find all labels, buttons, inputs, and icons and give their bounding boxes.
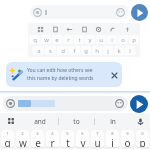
staticText: e bbox=[35, 136, 41, 147]
button[interactable]: 2 bbox=[16, 130, 29, 147]
staticText: g bbox=[84, 47, 88, 55]
staticText: 9 bbox=[126, 131, 129, 136]
staticText: o bbox=[124, 136, 131, 147]
button[interactable]: 5 bbox=[61, 130, 74, 147]
staticText: y bbox=[80, 136, 86, 147]
button[interactable]: Toolbar 1 bbox=[52, 26, 59, 33]
button[interactable]: k bbox=[114, 46, 124, 55]
staticText: 6 bbox=[81, 131, 84, 136]
staticText: y bbox=[88, 36, 92, 44]
button[interactable]: o bbox=[118, 35, 128, 44]
staticText: k bbox=[117, 47, 121, 55]
button[interactable]: Dismiss bbox=[109, 70, 119, 80]
staticText: to bbox=[73, 117, 80, 126]
button[interactable]: p bbox=[129, 35, 139, 44]
button[interactable]: Toolbar 4 bbox=[95, 26, 102, 33]
button[interactable]: r bbox=[63, 35, 73, 44]
staticText: 1 bbox=[6, 131, 9, 136]
button[interactable]: q bbox=[29, 35, 40, 44]
button[interactable]: Send bbox=[130, 95, 148, 113]
button[interactable]: 4 bbox=[46, 130, 59, 147]
staticText: f bbox=[73, 47, 76, 55]
staticText: p bbox=[132, 36, 136, 44]
staticText: j bbox=[107, 47, 109, 55]
button[interactable]: Toolbar 3 bbox=[81, 26, 88, 33]
button[interactable]: to bbox=[59, 113, 94, 129]
staticText: in bbox=[110, 117, 116, 126]
button[interactable]: t bbox=[74, 35, 84, 44]
staticText: p bbox=[139, 136, 146, 147]
button[interactable]: and bbox=[22, 113, 58, 129]
button[interactable]: Voice input bbox=[130, 113, 150, 129]
staticText: q bbox=[33, 36, 37, 44]
staticText: q bbox=[4, 136, 11, 147]
button[interactable]: w bbox=[41, 35, 51, 44]
other: Emoji bbox=[116, 8, 125, 17]
staticText: 5 bbox=[66, 131, 69, 136]
staticText: 3 bbox=[36, 131, 39, 136]
button[interactable]: 0 bbox=[136, 130, 149, 147]
button[interactable]: j bbox=[103, 46, 113, 55]
button[interactable]: u bbox=[96, 35, 106, 44]
other: Emoji bbox=[115, 99, 124, 108]
button[interactable]: i bbox=[107, 35, 117, 44]
staticText: h bbox=[95, 47, 99, 55]
staticText: u bbox=[99, 36, 103, 44]
button[interactable]: f bbox=[69, 46, 80, 55]
button[interactable]: g bbox=[81, 46, 91, 55]
button[interactable]: Attach bbox=[30, 5, 129, 19]
button[interactable]: e bbox=[52, 35, 62, 44]
staticText: o bbox=[121, 36, 125, 44]
button[interactable]: Attach bbox=[3, 96, 128, 111]
button[interactable]: s bbox=[45, 46, 56, 55]
staticText: i bbox=[111, 136, 114, 147]
staticText: l bbox=[129, 47, 131, 55]
staticText: w bbox=[19, 136, 27, 147]
staticText: e bbox=[55, 36, 59, 44]
staticText: a bbox=[37, 47, 41, 55]
staticText: this name by deleting words bbox=[27, 75, 94, 82]
button[interactable]: Toolbar 2 bbox=[66, 26, 73, 33]
staticText: i bbox=[111, 36, 113, 44]
staticText: r bbox=[67, 36, 70, 44]
button[interactable]: You can edit how others see bbox=[6, 62, 122, 87]
staticText: 8 bbox=[111, 131, 114, 136]
staticText: You can edit how others see bbox=[27, 67, 93, 74]
other: Attach bbox=[6, 99, 15, 108]
button[interactable]: h bbox=[92, 46, 102, 55]
button[interactable]: 7 bbox=[91, 130, 104, 147]
button[interactable]: Send bbox=[131, 4, 148, 21]
staticText: 7 bbox=[96, 131, 99, 136]
button[interactable]: d bbox=[57, 46, 68, 55]
button[interactable]: 3 bbox=[31, 130, 44, 147]
staticText: s bbox=[49, 47, 52, 55]
button[interactable]: Toolbar 6 bbox=[124, 26, 131, 33]
button[interactable]: Open toolbar bbox=[0, 113, 22, 129]
staticText: 2 bbox=[21, 131, 24, 136]
staticText: u bbox=[94, 136, 101, 147]
button[interactable]: Toolbar 5 bbox=[109, 26, 116, 33]
button[interactable]: in bbox=[95, 113, 130, 129]
staticText: w bbox=[44, 36, 49, 44]
button[interactable]: 8 bbox=[106, 130, 119, 147]
staticText: 4 bbox=[51, 131, 54, 136]
staticText: t bbox=[66, 136, 70, 147]
staticText: t bbox=[78, 36, 81, 44]
staticText: d bbox=[61, 47, 65, 55]
staticText: and bbox=[34, 117, 46, 126]
button[interactable]: 1 bbox=[1, 130, 14, 147]
staticText: 0 bbox=[141, 131, 144, 136]
button[interactable]: 6 bbox=[76, 130, 89, 147]
button[interactable]: a bbox=[33, 46, 44, 55]
button[interactable]: Toolbar 0 bbox=[37, 26, 44, 33]
button[interactable]: l bbox=[125, 46, 135, 55]
button[interactable]: 9 bbox=[121, 130, 134, 147]
other: Attach bbox=[33, 8, 42, 17]
button[interactable]: y bbox=[85, 35, 95, 44]
staticText: r bbox=[50, 136, 55, 147]
